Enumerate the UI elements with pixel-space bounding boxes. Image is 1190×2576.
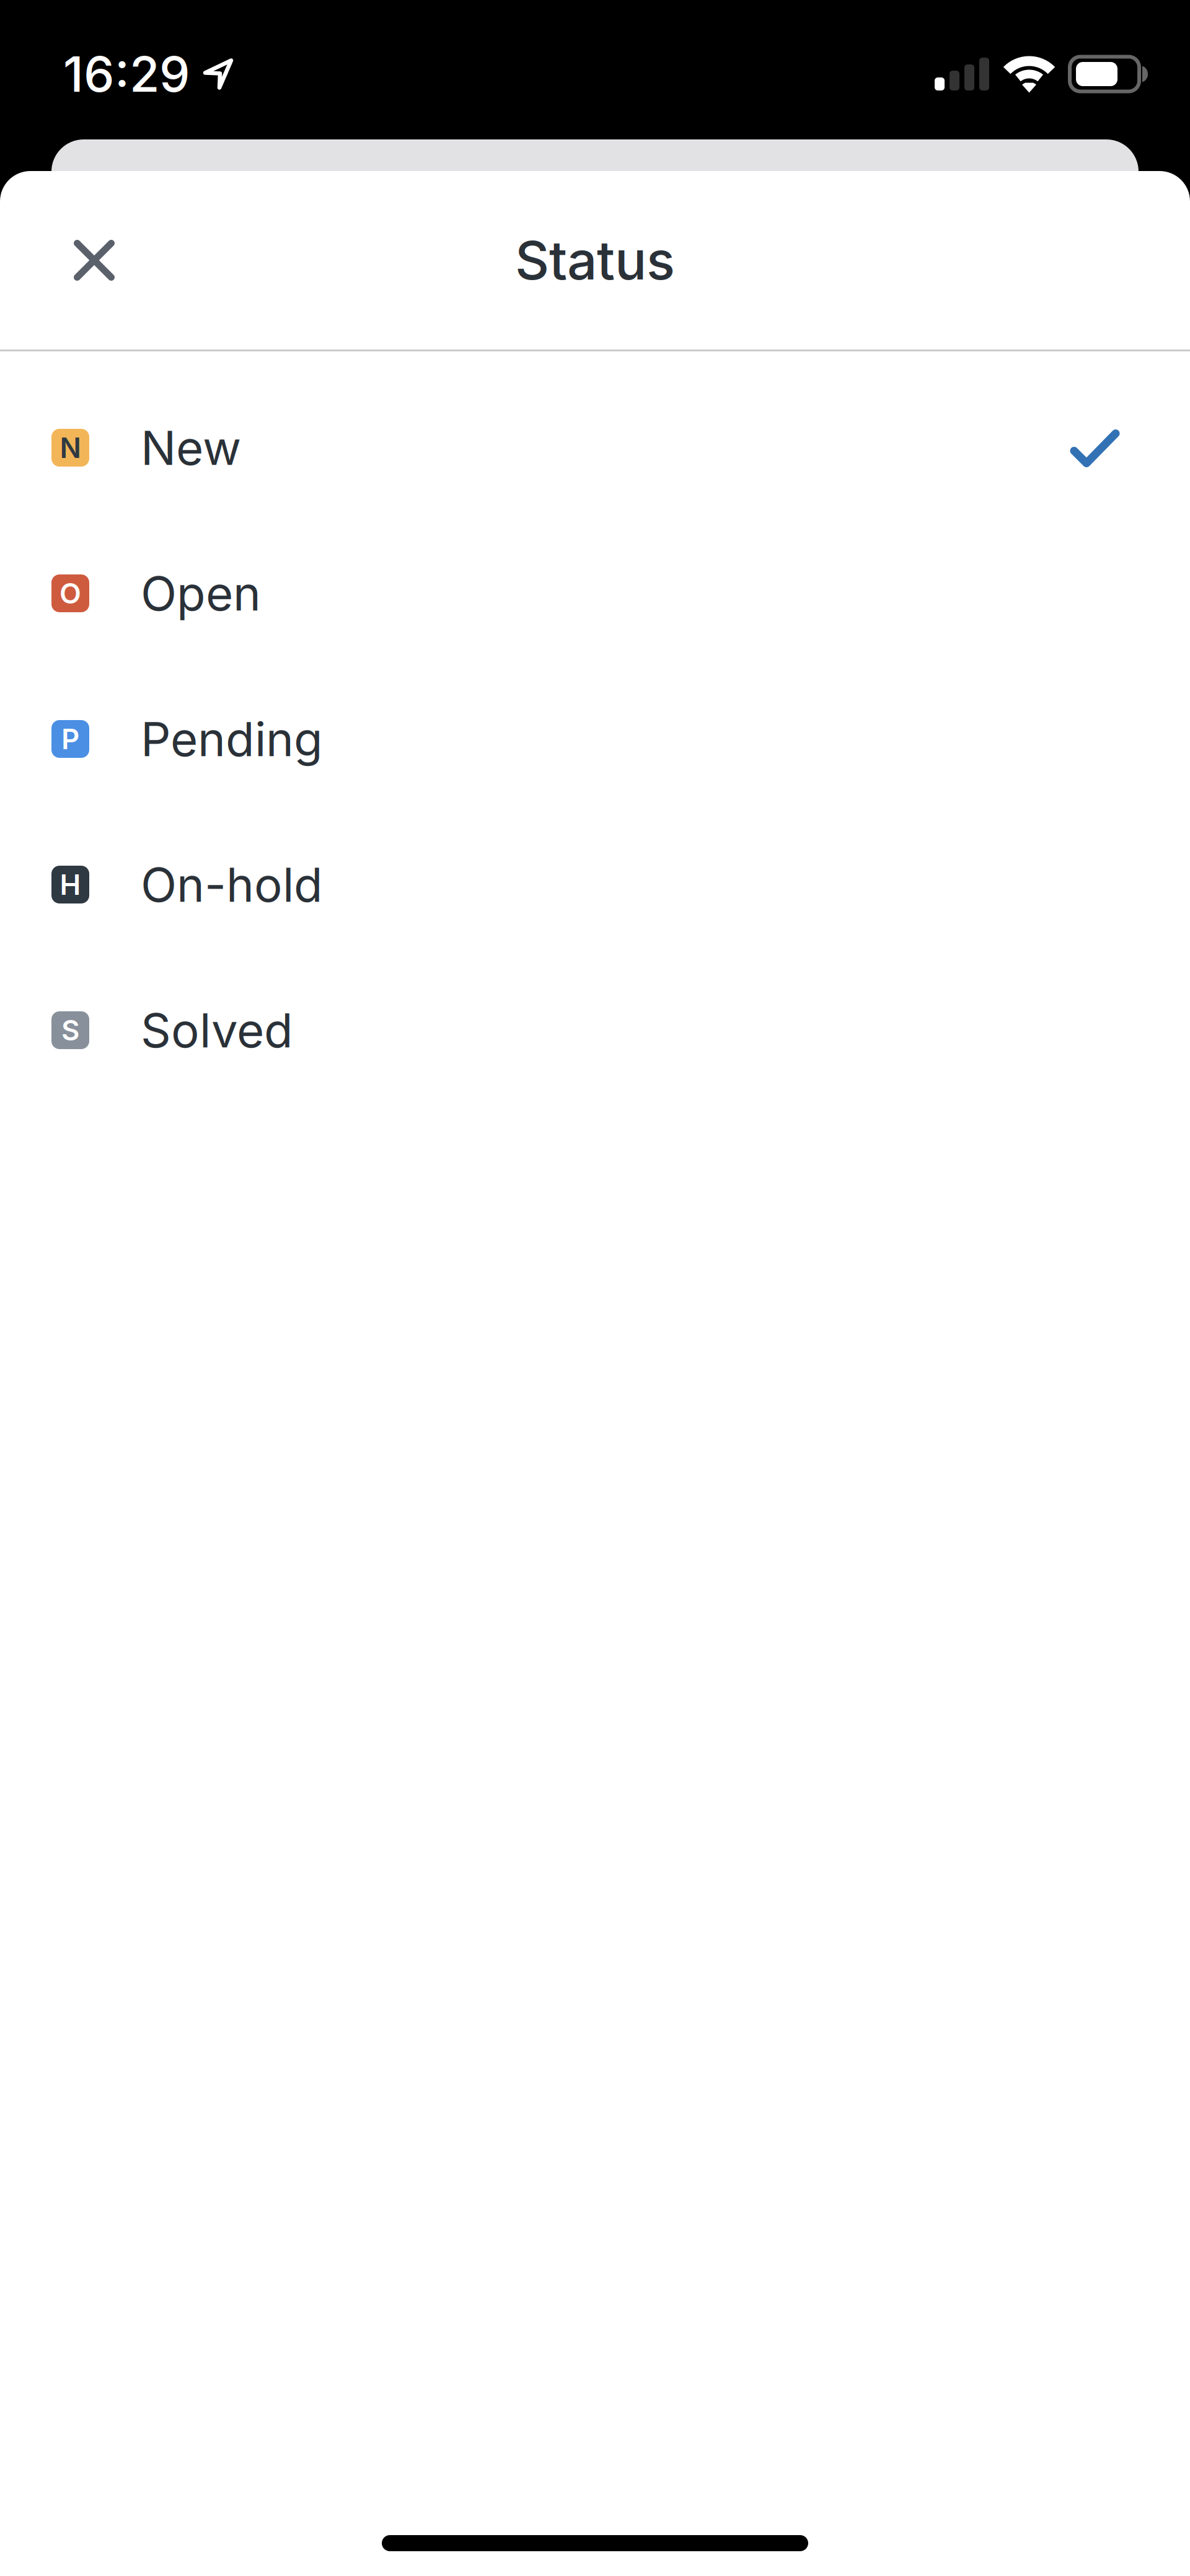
staticText: P	[61, 722, 79, 756]
staticText: Pending	[141, 710, 323, 767]
staticText: S	[61, 1013, 79, 1047]
staticText: H	[60, 868, 81, 902]
staticText: On-hold	[141, 856, 323, 913]
button[interactable]: O	[0, 521, 1190, 666]
staticText: Solved	[141, 1002, 293, 1059]
staticText: Open	[141, 565, 261, 622]
staticText: Status	[515, 228, 675, 292]
button[interactable]: S	[0, 957, 1190, 1103]
staticText: 16:29	[63, 45, 190, 104]
staticText: N	[60, 431, 81, 465]
staticText: New	[141, 419, 241, 476]
button[interactable]: N	[0, 375, 1190, 521]
button[interactable]: P	[0, 666, 1190, 812]
button[interactable]: H	[0, 812, 1190, 957]
staticText: O	[59, 576, 81, 610]
button[interactable]: Close	[51, 217, 138, 304]
